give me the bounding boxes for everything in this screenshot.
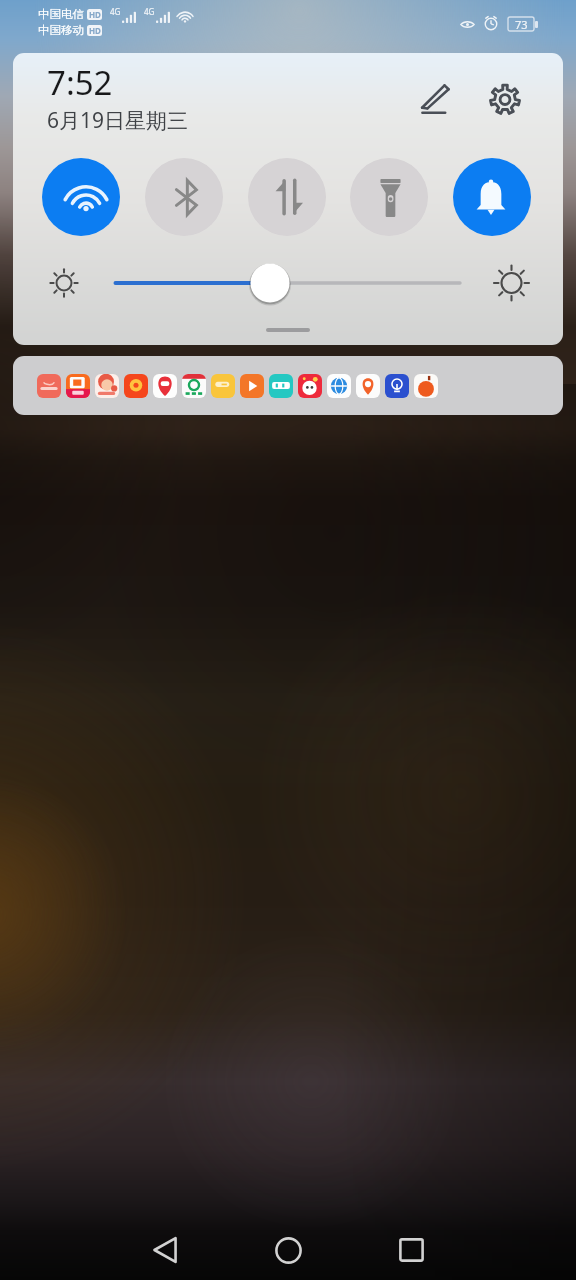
button[interactable]: Wi-Fi [42, 158, 120, 236]
staticText: HD [89, 25, 101, 36]
button[interactable]: Brightness [13, 255, 563, 311]
button[interactable]: Mobile data [248, 158, 326, 236]
button[interactable]: Bluetooth [145, 158, 223, 236]
button[interactable]: Settings [481, 74, 529, 122]
staticText: 4G [110, 6, 121, 17]
button[interactable]: Maps [356, 374, 380, 398]
button[interactable]: Expand [13, 328, 563, 332]
button[interactable]: Taobao [66, 374, 90, 398]
staticText: 6月19日星期三 [47, 106, 189, 135]
staticText: HD [89, 9, 101, 20]
button[interactable]: Flashlight [350, 158, 428, 236]
staticText: 中国移动 [38, 23, 84, 37]
button[interactable]: Edit [411, 74, 459, 122]
button[interactable]: App [298, 374, 322, 398]
button[interactable]: App [414, 374, 438, 398]
button[interactable]: Video [240, 374, 264, 398]
button[interactable]: App [182, 374, 206, 398]
button[interactable]: China Unicom [153, 374, 177, 398]
button[interactable]: Back [124, 1220, 206, 1280]
button[interactable]: Browser [327, 374, 351, 398]
button[interactable]: Recents [370, 1220, 452, 1280]
staticText: 73 [515, 17, 528, 31]
button[interactable]: Smart Life [385, 374, 409, 398]
button[interactable]: Wallet [211, 374, 235, 398]
button[interactable]: App [95, 374, 119, 398]
staticText: 中国电信 [38, 7, 84, 21]
staticText: 4G [144, 6, 155, 17]
button[interactable]: Ring mode [453, 158, 531, 236]
button[interactable]: HUAWEI AppGallery [37, 374, 61, 398]
button[interactable]: Home [247, 1220, 329, 1280]
button[interactable]: TapTap [269, 374, 293, 398]
staticText: 7:52 [47, 60, 113, 105]
button[interactable]: App [124, 374, 148, 398]
